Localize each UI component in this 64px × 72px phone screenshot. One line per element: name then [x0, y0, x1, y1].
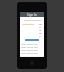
- other: Home: [30, 61, 34, 65]
- staticText: Sign In: [27, 13, 37, 17]
- staticText: Item option text: [21, 43, 38, 46]
- staticText: Required: [39, 22, 42, 37]
- button[interactable]: Sign In: [20, 12, 44, 17]
- staticText: Username: [22, 22, 35, 25]
- staticText: Item option text: [21, 46, 38, 49]
- staticText: Welcome back: [24, 18, 41, 21]
- staticText: Item option text: [21, 52, 38, 55]
- button[interactable]: [25, 39, 39, 41]
- staticText: Item option text: [21, 49, 38, 52]
